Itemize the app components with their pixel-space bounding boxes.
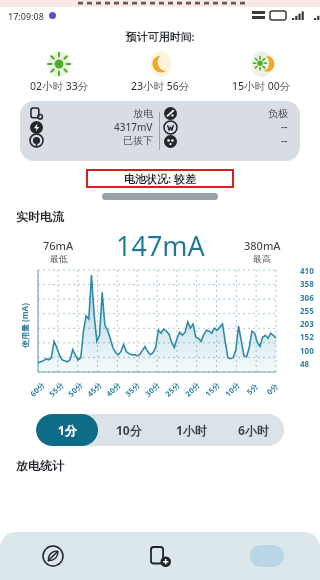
staticText: 1分 [58, 422, 77, 438]
staticText: 实时电流 [16, 209, 64, 224]
staticText: -- [281, 134, 288, 148]
staticText: 40分 [104, 379, 123, 399]
button[interactable]: 放电 [20, 101, 300, 161]
button[interactable]: 23小时 56分 [110, 51, 211, 93]
button[interactable]: 02小时 33分 [8, 51, 110, 93]
button[interactable]: 1分 [36, 414, 98, 446]
staticText: -- [281, 120, 288, 134]
staticText: 使用量 (mA) [19, 303, 30, 348]
staticText: 152 [300, 331, 314, 342]
staticText: 255 [300, 305, 314, 316]
staticText: 5分 [244, 381, 260, 397]
staticText: 48 [300, 358, 310, 369]
staticText: 20分 [183, 379, 202, 399]
staticText: 预计可用时间: [0, 29, 320, 44]
staticText: 410 [300, 265, 314, 276]
staticText: 76mA [43, 238, 74, 253]
staticText: 放电统计 [16, 458, 64, 473]
staticText: 最高 [253, 253, 271, 264]
staticText: 25分 [163, 379, 182, 399]
staticText: 50分 [66, 379, 85, 399]
staticText: 负极 [268, 107, 288, 120]
button[interactable]: 10分 [98, 414, 160, 446]
staticText: 15小时 00分 [232, 79, 291, 93]
staticText: 放电 [133, 107, 153, 120]
staticText: 1小时 [176, 422, 207, 438]
staticText: 55分 [47, 379, 66, 399]
staticText: 23小时 56分 [131, 79, 190, 93]
button[interactable]: Eco mode [0, 532, 106, 580]
staticText: 已拔下 [123, 134, 153, 147]
button[interactable]: 1小时 [160, 414, 222, 446]
staticText: 10分 [223, 379, 242, 399]
button[interactable]: Add battery [106, 532, 213, 580]
staticText: 35分 [123, 379, 142, 399]
staticText: 10分 [116, 422, 142, 438]
staticText: 17:09:08 [8, 10, 44, 22]
staticText: 306 [300, 292, 314, 303]
button[interactable]: 电池状况: 较差 [88, 171, 232, 186]
staticText: 45分 [85, 379, 104, 399]
staticText: 电池状况: 较差 [124, 171, 196, 186]
button[interactable]: Discharge stats [213, 532, 320, 580]
staticText: 02小时 33分 [30, 79, 89, 93]
staticText: 203 [300, 318, 314, 329]
staticText: 15分 [203, 379, 222, 399]
staticText: 4317mV [114, 120, 153, 134]
staticText: 最低 [50, 253, 68, 264]
staticText: 0分 [264, 381, 280, 397]
button[interactable]: 15小时 00分 [211, 51, 312, 93]
staticText: 358 [300, 278, 314, 289]
button[interactable]: 6小时 [222, 414, 284, 446]
staticText: 380mA [244, 238, 281, 253]
staticText: 30分 [143, 379, 162, 399]
staticText: 60分 [28, 379, 47, 399]
staticText: 6小时 [238, 422, 269, 438]
staticText: 147mA [116, 227, 205, 264]
staticText: 100 [300, 345, 314, 356]
